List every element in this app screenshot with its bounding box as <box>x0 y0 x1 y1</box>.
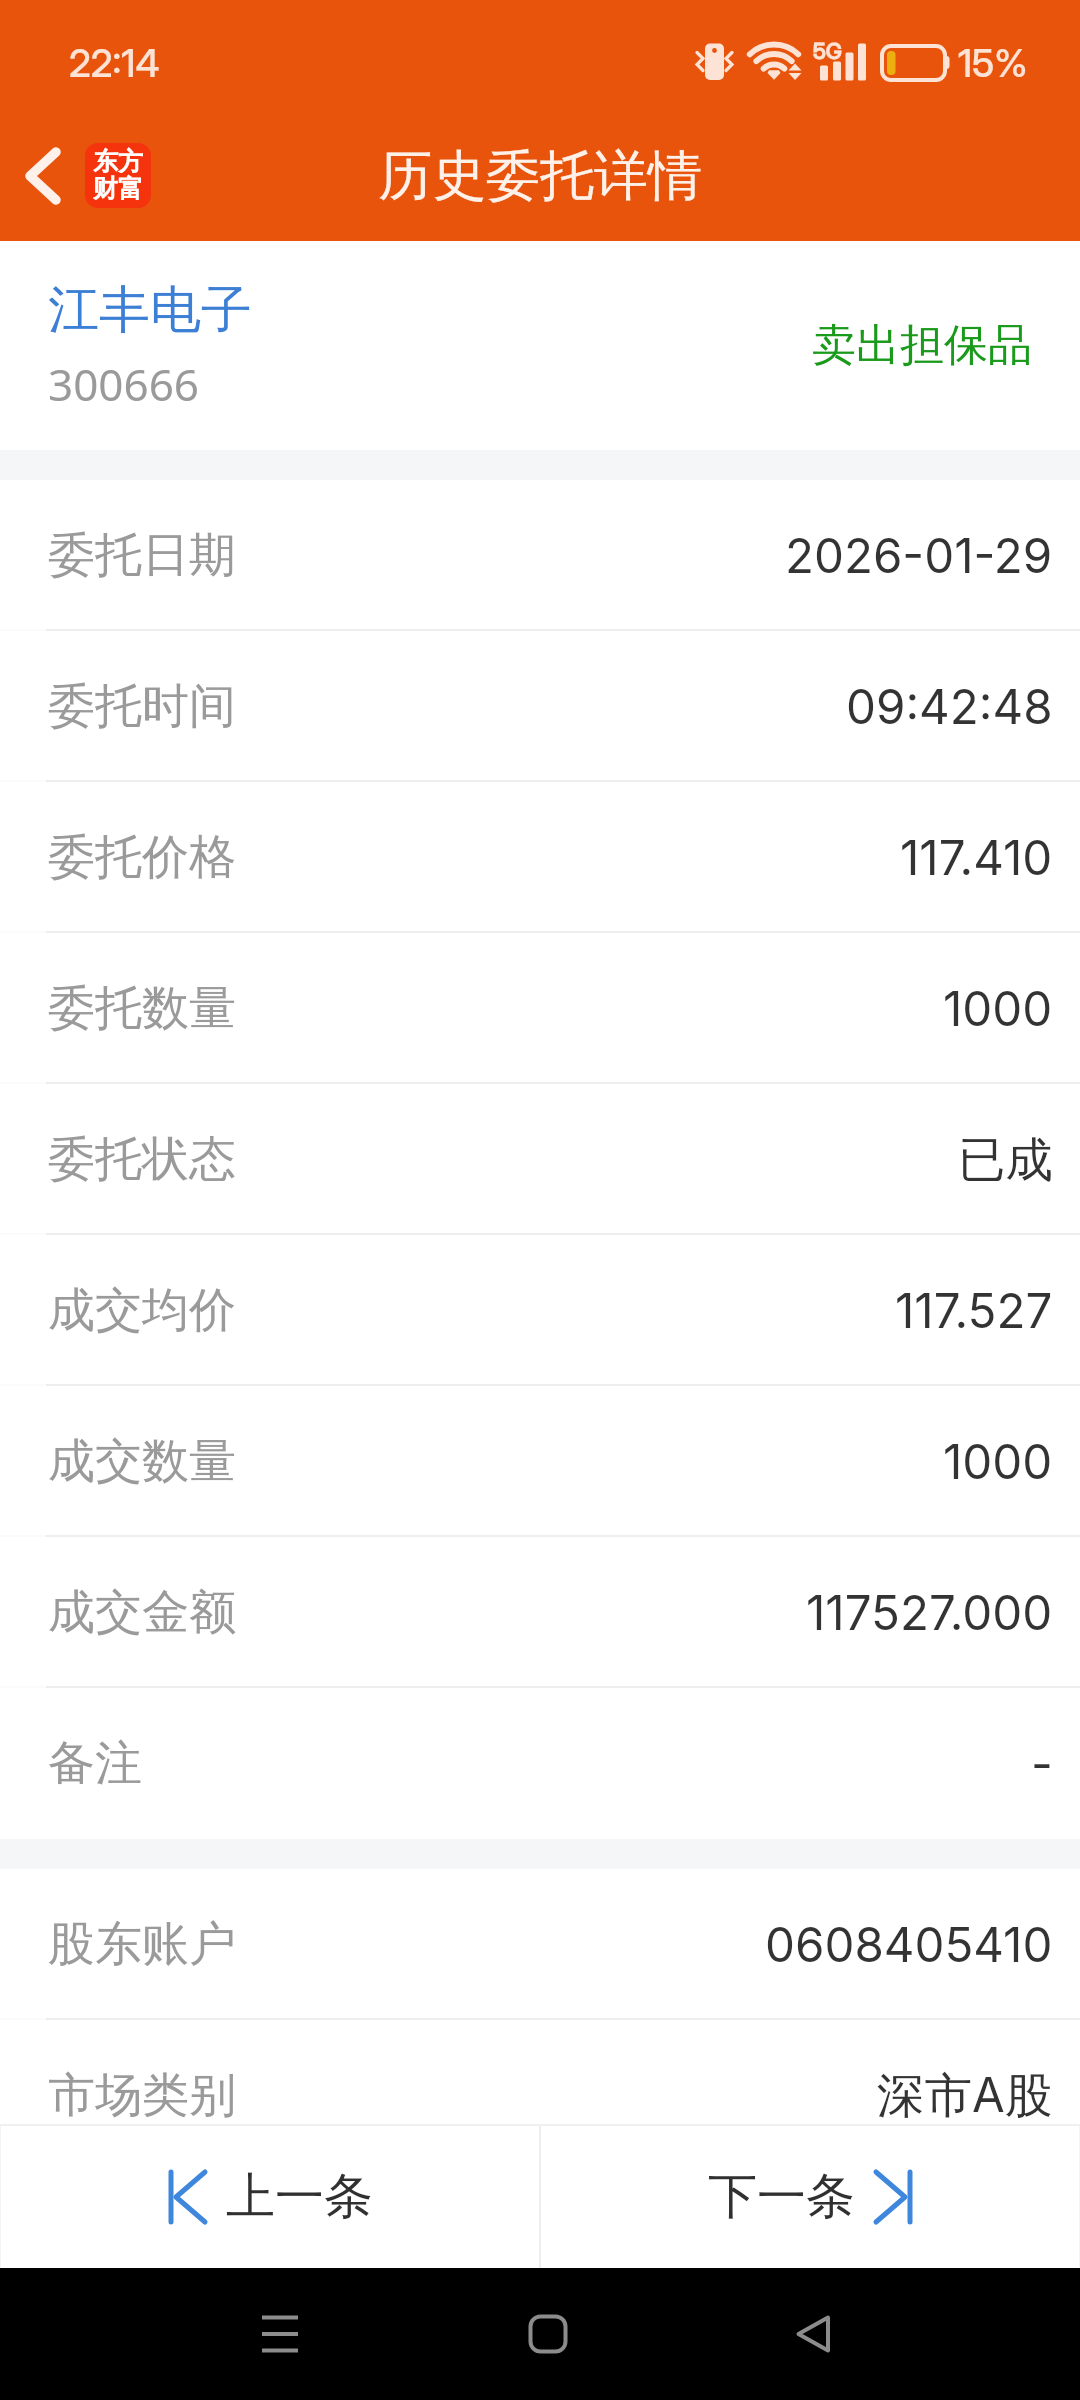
button[interactable]: 成交金额 <box>0 1537 1080 1688</box>
button[interactable]: 委托价格 <box>0 782 1080 933</box>
staticText: 下一条 <box>708 2166 855 2228</box>
staticText: 成交数量 <box>48 1432 236 1491</box>
staticText: - <box>1031 1735 1053 1792</box>
staticText: 117527.000 <box>806 1584 1053 1641</box>
staticText: 股东账户 <box>48 1915 236 1974</box>
button[interactable]: 上一条 <box>1 2126 539 2268</box>
staticText: 深市A股 <box>877 2066 1053 2126</box>
staticText: 22:14 <box>69 40 160 86</box>
button[interactable]: 股东账户 <box>0 1869 1080 2020</box>
button[interactable]: 下一条 <box>541 2126 1079 2268</box>
staticText: 市场类别 <box>48 2066 236 2125</box>
staticText: 委托时间 <box>48 677 236 736</box>
button[interactable]: Recent apps <box>190 2268 370 2400</box>
staticText: 东方 <box>93 146 143 173</box>
button[interactable]: Back <box>0 133 86 219</box>
staticText: 117.527 <box>895 1282 1053 1339</box>
staticText: 委托价格 <box>48 828 236 887</box>
staticText: 15% <box>958 40 1028 86</box>
button[interactable]: East Money logo <box>85 143 151 208</box>
button[interactable]: 备注 <box>0 1688 1080 1839</box>
button[interactable]: 委托状态 <box>0 1084 1080 1235</box>
staticText: 江丰电子 <box>48 278 252 342</box>
button[interactable]: Home <box>450 2268 630 2400</box>
staticText: 委托状态 <box>48 1130 236 1189</box>
staticText: 300666 <box>48 354 200 414</box>
staticText: 委托日期 <box>48 526 236 585</box>
staticText: 委托数量 <box>48 979 236 1038</box>
staticText: 1000 <box>943 1433 1053 1490</box>
button[interactable]: 市场类别 <box>0 2020 1080 2171</box>
staticText: 已成 <box>958 1130 1053 1190</box>
button[interactable]: Back <box>710 2268 890 2400</box>
staticText: 上一条 <box>226 2166 373 2228</box>
staticText: 2026-01-29 <box>785 527 1053 584</box>
staticText: 117.410 <box>900 829 1053 886</box>
staticText: 备注 <box>48 1734 142 1793</box>
staticText: 1000 <box>943 980 1053 1037</box>
staticText: 历史委托详情 <box>378 142 702 210</box>
button[interactable]: 成交均价 <box>0 1235 1080 1386</box>
staticText: 财富 <box>93 173 143 200</box>
staticText: 成交金额 <box>48 1583 236 1642</box>
button[interactable]: 委托数量 <box>0 933 1080 1084</box>
button[interactable]: 委托时间 <box>0 631 1080 782</box>
staticText: 成交均价 <box>48 1281 236 1340</box>
button[interactable]: 委托日期 <box>0 480 1080 631</box>
staticText: 卖出担保品 <box>812 318 1032 373</box>
staticText: 0608405410 <box>765 1916 1053 1973</box>
staticText: 09:42:48 <box>846 678 1053 735</box>
staticText: 5G <box>813 38 842 65</box>
button[interactable]: 成交数量 <box>0 1386 1080 1537</box>
